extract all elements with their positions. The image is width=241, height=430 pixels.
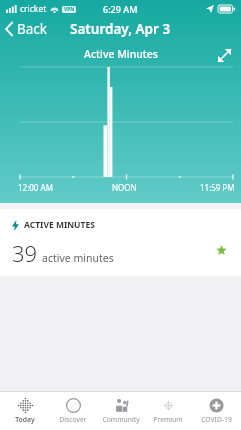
staticText: 11:59 PM: [200, 182, 235, 193]
button[interactable]: COVID-19: [193, 392, 239, 430]
button[interactable]: ACTIVE MINUTES: [0, 209, 241, 276]
staticText: COVID-19: [201, 415, 232, 424]
button[interactable]: Discover: [50, 392, 96, 430]
staticText: active minutes: [42, 251, 114, 265]
button[interactable]: Today: [2, 392, 48, 430]
other: Goal achieved star: [216, 245, 227, 256]
staticText: 6:29 AM: [103, 3, 138, 15]
staticText: VPN: [64, 6, 75, 13]
staticText: Community: [102, 415, 140, 424]
staticText: 12:00 AM: [18, 182, 53, 193]
staticText: Today: [15, 415, 35, 424]
staticText: Back: [17, 20, 48, 38]
staticText: 39: [12, 238, 38, 268]
staticText: Saturday, Apr 3: [70, 20, 171, 38]
staticText: Discover: [59, 415, 87, 424]
staticText: NOON: [112, 182, 137, 193]
button[interactable]: Community: [98, 392, 144, 430]
staticText: Premium: [153, 415, 183, 424]
button[interactable]: Expand chart: [213, 44, 235, 66]
staticText: Active Minutes: [84, 47, 158, 61]
button[interactable]: Premium: [145, 392, 191, 430]
staticText: cricket: [20, 3, 47, 15]
button[interactable]: Back: [0, 20, 56, 38]
staticText: ACTIVE MINUTES: [24, 219, 95, 231]
